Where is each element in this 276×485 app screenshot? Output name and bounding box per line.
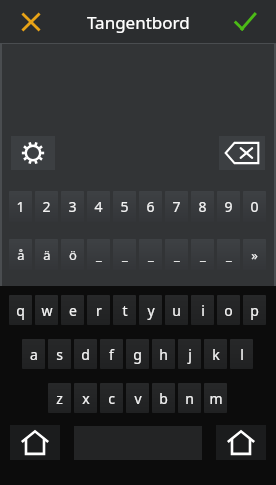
button[interactable]: _ xyxy=(217,239,240,270)
staticText: 0 xyxy=(250,197,259,216)
button[interactable]: Shift xyxy=(10,425,60,460)
button[interactable]: x xyxy=(74,383,97,413)
staticText: _ xyxy=(96,246,102,264)
button[interactable]: Enter xyxy=(216,425,266,460)
button[interactable]: q xyxy=(9,295,32,325)
button[interactable]: _ xyxy=(165,239,188,270)
staticText: 4 xyxy=(94,197,103,216)
staticText: _ xyxy=(174,246,180,264)
staticText: l xyxy=(240,345,244,364)
staticText: x xyxy=(82,389,90,408)
staticText: a xyxy=(30,345,38,364)
button[interactable]: t xyxy=(113,295,136,325)
button[interactable]: f xyxy=(100,339,123,369)
button[interactable]: c xyxy=(100,383,123,413)
button[interactable]: l xyxy=(230,339,253,369)
button[interactable]: 9 xyxy=(217,191,240,222)
button[interactable]: w xyxy=(35,295,58,325)
staticText: p xyxy=(250,301,259,320)
button[interactable]: 2 xyxy=(35,191,58,222)
button[interactable]: Cancel xyxy=(14,5,48,39)
staticText: _ xyxy=(226,246,232,264)
staticText: _ xyxy=(200,246,206,264)
staticText: 7 xyxy=(172,197,181,216)
button[interactable]: 6 xyxy=(139,191,162,222)
staticText: _ xyxy=(148,246,154,264)
button[interactable]: i xyxy=(191,295,214,325)
button[interactable]: å xyxy=(9,239,32,270)
staticText: e xyxy=(69,301,77,320)
staticText: 8 xyxy=(198,197,207,216)
button[interactable]: o xyxy=(217,295,240,325)
button[interactable]: 1 xyxy=(9,191,32,222)
button[interactable]: y xyxy=(139,295,162,325)
button[interactable]: Backspace xyxy=(219,136,265,170)
button[interactable]: h xyxy=(152,339,175,369)
staticText: q xyxy=(16,301,25,320)
staticText: u xyxy=(172,301,181,320)
button[interactable]: 0 xyxy=(243,191,266,222)
button[interactable]: 8 xyxy=(191,191,214,222)
staticText: z xyxy=(56,389,63,408)
button[interactable]: j xyxy=(178,339,201,369)
button[interactable]: b xyxy=(152,383,175,413)
staticText: h xyxy=(159,345,168,364)
staticText: 5 xyxy=(120,197,129,216)
staticText: å xyxy=(17,246,25,264)
button[interactable]: _ xyxy=(113,239,136,270)
staticText: f xyxy=(109,345,114,364)
staticText: g xyxy=(133,345,142,364)
staticText: b xyxy=(159,389,168,408)
staticText: t xyxy=(122,301,128,320)
button[interactable]: p xyxy=(243,295,266,325)
staticText: c xyxy=(108,389,115,408)
button[interactable]: v xyxy=(126,383,149,413)
button[interactable]: ä xyxy=(35,239,58,270)
button[interactable]: k xyxy=(204,339,227,369)
staticText: s xyxy=(56,345,63,364)
staticText: » xyxy=(251,246,258,264)
staticText: 9 xyxy=(224,197,233,216)
staticText: d xyxy=(81,345,90,364)
staticText: n xyxy=(185,389,194,408)
staticText: w xyxy=(41,301,53,320)
staticText: y xyxy=(147,301,155,320)
button[interactable]: n xyxy=(178,383,201,413)
button[interactable]: ö xyxy=(61,239,84,270)
staticText: 1 xyxy=(16,197,25,216)
button[interactable]: d xyxy=(74,339,97,369)
button[interactable]: g xyxy=(126,339,149,369)
staticText: ä xyxy=(43,246,51,264)
button[interactable]: a xyxy=(22,339,45,369)
staticText: ö xyxy=(69,246,77,264)
staticText: 2 xyxy=(42,197,51,216)
button[interactable]: » xyxy=(243,239,266,270)
staticText: 3 xyxy=(68,197,77,216)
button[interactable]: z xyxy=(48,383,71,413)
staticText: m xyxy=(209,389,223,408)
staticText: r xyxy=(96,301,102,320)
button[interactable]: _ xyxy=(87,239,110,270)
button[interactable]: 5 xyxy=(113,191,136,222)
button[interactable]: r xyxy=(87,295,110,325)
staticText: i xyxy=(201,301,205,320)
button[interactable]: 3 xyxy=(61,191,84,222)
button[interactable]: u xyxy=(165,295,188,325)
button[interactable]: 4 xyxy=(87,191,110,222)
button[interactable]: e xyxy=(61,295,84,325)
staticText: j xyxy=(188,345,192,364)
staticText: k xyxy=(212,345,220,364)
staticText: 6 xyxy=(146,197,155,216)
button[interactable]: m xyxy=(204,383,227,413)
button[interactable]: 7 xyxy=(165,191,188,222)
staticText: _ xyxy=(122,246,128,264)
button[interactable]: _ xyxy=(191,239,214,270)
button[interactable]: Settings xyxy=(11,136,55,170)
staticText: Tangentbord xyxy=(87,11,190,34)
staticText: o xyxy=(224,301,233,320)
button[interactable]: s xyxy=(48,339,71,369)
button[interactable]: _ xyxy=(139,239,162,270)
staticText: v xyxy=(134,389,142,408)
button[interactable]: Accept xyxy=(228,5,262,39)
